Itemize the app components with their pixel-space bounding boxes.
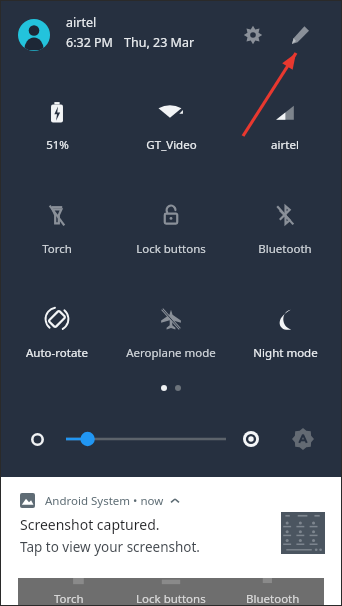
staticText: 6:32 PM (66, 34, 113, 51)
button[interactable]: Lock buttons (114, 196, 228, 274)
staticText: Torch (54, 591, 84, 606)
button[interactable]: Lower brightness (24, 426, 50, 452)
button[interactable]: Aeroplane mode (114, 300, 228, 378)
staticText: Bluetooth (246, 591, 300, 606)
button[interactable]: Auto brightness (288, 424, 318, 454)
button[interactable]: Bluetooth (228, 196, 342, 274)
staticText: Tap to view your screenshot. (20, 538, 200, 556)
button[interactable]: Night mode (228, 300, 342, 378)
button[interactable]: Android System • now (0, 481, 342, 567)
staticText: Thu, 23 Mar (124, 34, 195, 51)
staticText: Lock buttons (136, 241, 206, 257)
button[interactable]: User airtel (18, 19, 50, 51)
button[interactable]: Torch (0, 196, 114, 274)
staticText: Auto-rotate (26, 345, 88, 361)
button[interactable]: 51% (0, 92, 114, 170)
button[interactable]: Raise brightness (238, 426, 264, 452)
button[interactable]: GT_Video (114, 92, 228, 170)
staticText: GT_Video (146, 137, 197, 153)
staticText: Aeroplane mode (126, 345, 216, 361)
button[interactable]: Edit tiles (286, 21, 314, 49)
button[interactable]: Brightness slider (66, 426, 226, 452)
staticText: Screenshot captured. (20, 515, 160, 534)
button[interactable]: airtel (228, 92, 342, 170)
button[interactable]: Auto-rotate (0, 300, 114, 378)
staticText: Android System • now (45, 493, 164, 509)
staticText: Lock buttons (136, 591, 206, 606)
staticText: 51% (46, 137, 69, 153)
button[interactable]: Settings (239, 21, 267, 49)
staticText: Bluetooth (258, 241, 312, 257)
staticText: airtel (66, 14, 97, 31)
staticText: Night mode (253, 345, 318, 361)
staticText: airtel (271, 137, 299, 153)
staticText: Torch (42, 241, 72, 257)
